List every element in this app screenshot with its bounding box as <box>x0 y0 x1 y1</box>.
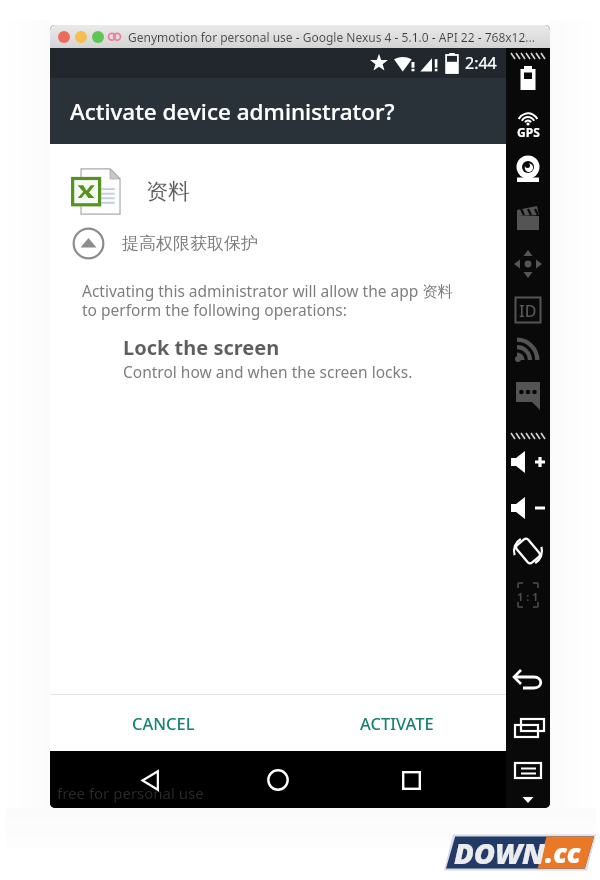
staticText: 资料 <box>146 178 190 206</box>
staticText: free for personal use <box>57 783 204 803</box>
staticText: Control how and when the screen locks. <box>123 361 413 382</box>
staticText: Genymotion for personal use - Google Nex… <box>128 29 535 45</box>
button[interactable]: CANCEL <box>122 702 205 744</box>
button[interactable]: Back <box>126 756 174 804</box>
staticText: 提高权限获取保护 <box>122 233 258 254</box>
staticText: Activating this administrator will allow… <box>82 280 466 320</box>
staticText: Activate device administrator? <box>70 96 395 127</box>
button[interactable]: Home <box>254 756 302 804</box>
staticText: GPS <box>517 124 540 140</box>
staticText: CANCEL <box>132 712 195 734</box>
staticText: Lock the screen <box>123 334 280 361</box>
staticText: DOWN <box>454 833 545 871</box>
button[interactable]: Recents <box>387 756 435 804</box>
staticText: 2:44 <box>465 52 497 74</box>
staticText: ACTIVATE <box>360 712 434 734</box>
staticText: .cc <box>545 834 581 871</box>
staticText: 1 : 1 <box>517 589 539 604</box>
staticText: ID <box>519 300 537 322</box>
button[interactable]: ACTIVATE <box>350 702 444 744</box>
